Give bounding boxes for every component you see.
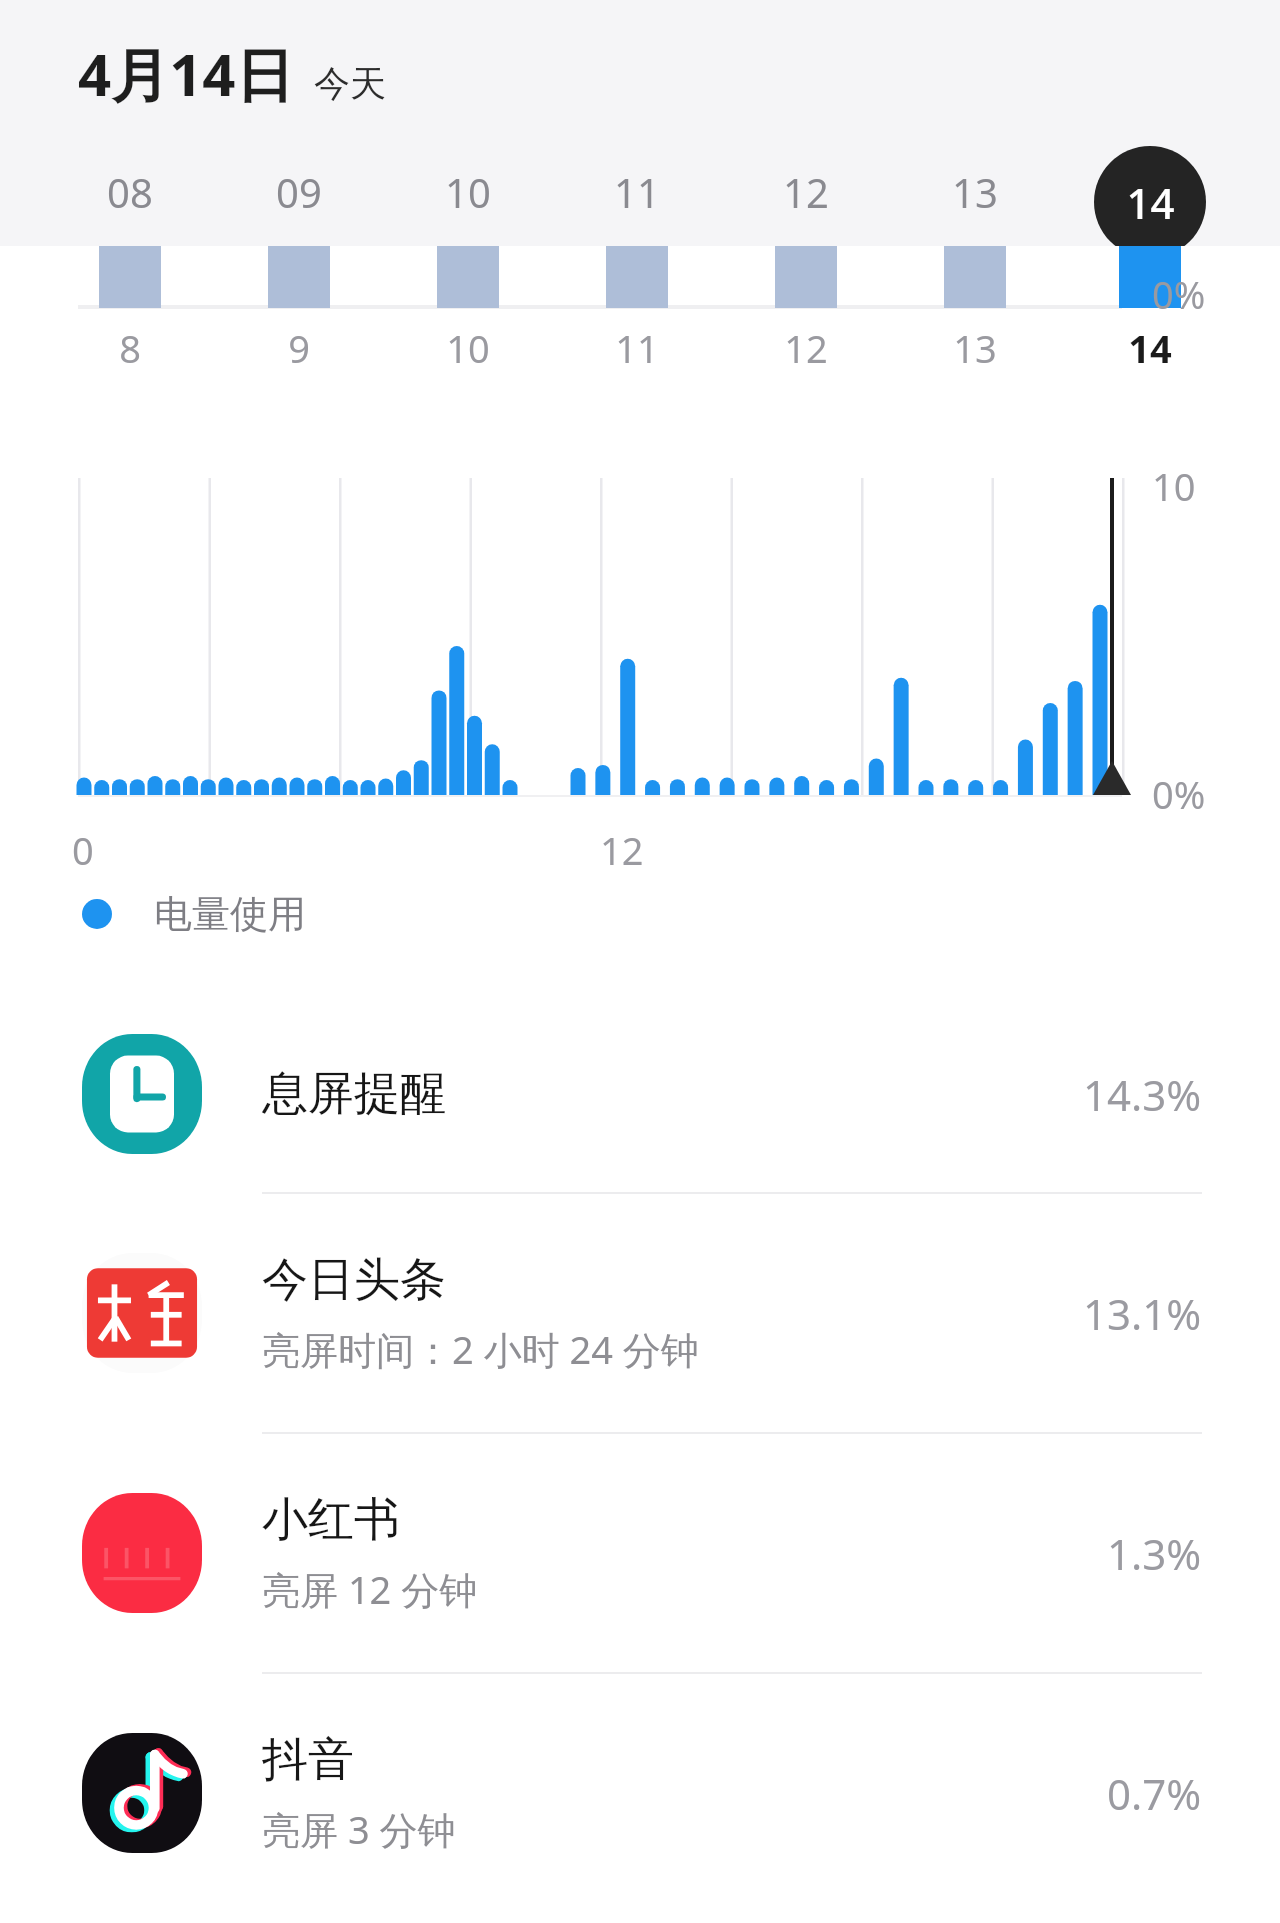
staticText: 13.1% bbox=[1083, 1285, 1202, 1342]
staticText: 抖音 bbox=[262, 1731, 354, 1789]
button[interactable]: 09 bbox=[249, 164, 349, 220]
staticText: 今日头条 bbox=[262, 1251, 446, 1309]
button[interactable]: 14 bbox=[1094, 146, 1206, 258]
staticText: 9 bbox=[288, 322, 310, 372]
staticText: 今天 bbox=[314, 61, 386, 106]
staticText: 10 bbox=[445, 165, 491, 219]
button[interactable]: 08 bbox=[80, 164, 180, 220]
staticText: 11 bbox=[614, 165, 660, 219]
button[interactable]: 息屏提醒 bbox=[0, 996, 1280, 1192]
other: 今日头条 bbox=[78, 1249, 206, 1377]
staticText: 14 bbox=[1128, 322, 1172, 372]
staticText: 12 bbox=[784, 322, 828, 372]
staticText: 0% bbox=[1152, 768, 1206, 820]
staticText: 1.3% bbox=[1107, 1525, 1202, 1582]
staticText: 12 bbox=[783, 165, 829, 219]
other: 抖音 bbox=[78, 1729, 206, 1857]
staticText: 09 bbox=[276, 165, 322, 219]
button[interactable]: 10 bbox=[418, 164, 518, 220]
staticText: 12 bbox=[600, 824, 644, 876]
staticText: 电量使用 bbox=[154, 890, 306, 938]
staticText: 13 bbox=[952, 165, 998, 219]
staticText: 10 bbox=[1152, 460, 1196, 512]
button[interactable]: 抖音 bbox=[0, 1674, 1280, 1912]
staticText: 08 bbox=[107, 165, 153, 219]
staticText: 亮屏 12 分钟 bbox=[262, 1563, 478, 1615]
staticText: 息屏提醒 bbox=[262, 1065, 446, 1123]
staticText: 亮屏 3 分钟 bbox=[262, 1803, 456, 1855]
staticText: 14.3% bbox=[1083, 1066, 1202, 1123]
button[interactable]: 今日头条 bbox=[0, 1194, 1280, 1432]
staticText: 0% bbox=[1152, 268, 1206, 320]
staticText: 0 bbox=[72, 824, 94, 876]
button[interactable]: 小红书 bbox=[0, 1434, 1280, 1672]
other: 小红书 bbox=[78, 1489, 206, 1617]
staticText: 11 bbox=[615, 322, 659, 372]
staticText: 13 bbox=[953, 322, 997, 372]
staticText: 4月14日 bbox=[78, 34, 294, 113]
other: 息屏提醒 bbox=[78, 1030, 206, 1158]
staticText: 0.7% bbox=[1107, 1765, 1202, 1822]
staticText: 10 bbox=[446, 322, 490, 372]
button[interactable]: 11 bbox=[587, 164, 687, 220]
button[interactable]: 13 bbox=[925, 164, 1025, 220]
staticText: 8 bbox=[119, 322, 141, 372]
staticText: 小红书 bbox=[262, 1491, 400, 1549]
staticText: 亮屏时间：2 小时 24 分钟 bbox=[262, 1323, 699, 1375]
button[interactable]: 12 bbox=[756, 164, 856, 220]
staticText: 14 bbox=[1126, 174, 1175, 231]
